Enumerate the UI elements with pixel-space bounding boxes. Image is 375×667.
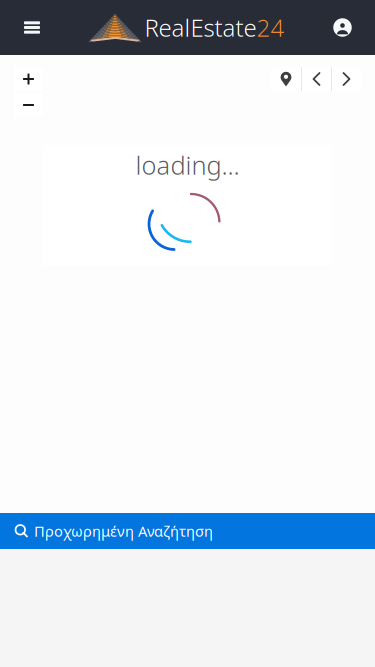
button[interactable]: My location xyxy=(271,67,301,91)
button[interactable]: Account xyxy=(310,0,375,55)
staticText: RealEstate xyxy=(144,12,256,43)
button[interactable]: Προχωρημένη Αναζήτηση xyxy=(0,513,375,549)
staticText: Προχωρημένη Αναζήτηση xyxy=(34,521,213,541)
button[interactable]: Zoom out xyxy=(14,93,43,117)
staticText: 24 xyxy=(256,12,284,43)
button[interactable]: Previous xyxy=(302,67,331,91)
button[interactable]: Next xyxy=(332,67,361,91)
button[interactable]: Zoom in xyxy=(14,67,43,91)
staticText: loading... xyxy=(135,148,239,182)
button[interactable]: Menu xyxy=(0,0,64,55)
